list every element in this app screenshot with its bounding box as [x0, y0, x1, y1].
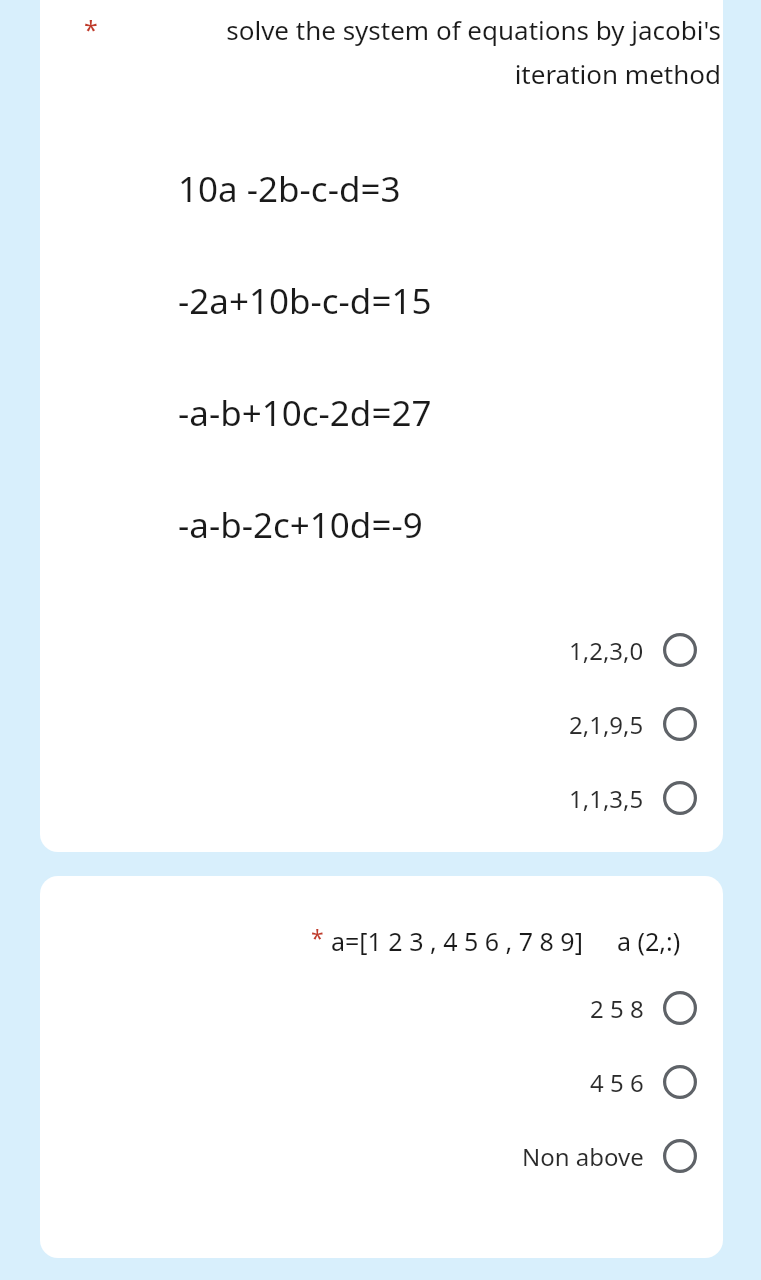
other: Select 2,1,9,5: [663, 707, 697, 741]
staticText: -a-b-2c+10d=-9: [178, 501, 423, 549]
other: Select 2 5 8: [663, 991, 697, 1025]
button[interactable]: *: [40, 0, 723, 852]
other: Select 1,1,3,5: [663, 781, 697, 815]
other: Select 4 5 6: [663, 1065, 697, 1099]
other: Select Non above: [663, 1139, 697, 1173]
button[interactable]: 1,1,3,5: [40, 761, 723, 835]
staticText: 1,1,3,5: [569, 782, 644, 815]
staticText: Non above: [522, 1140, 644, 1173]
staticText: 4 5 6: [590, 1066, 644, 1099]
staticText: -a-b+10c-2d=27: [178, 389, 432, 437]
button[interactable]: 2,1,9,5: [40, 687, 723, 761]
other: Select 1,2,3,0: [663, 633, 697, 667]
button[interactable]: *: [40, 876, 723, 1258]
button[interactable]: 1,2,3,0: [40, 613, 723, 687]
staticText: *: [84, 12, 98, 46]
staticText: 2 5 8: [590, 992, 644, 1025]
button[interactable]: 2 5 8: [40, 971, 723, 1045]
staticText: a (2,:): [617, 924, 681, 958]
staticText: 2,1,9,5: [569, 708, 644, 741]
staticText: -2a+10b-c-d=15: [178, 277, 432, 325]
staticText: 1,2,3,0: [569, 634, 644, 667]
staticText: *: [311, 922, 324, 953]
button[interactable]: 4 5 6: [40, 1045, 723, 1119]
staticText: solve the system of equations by jacobi'…: [120, 12, 721, 91]
staticText: a=[1 2 3 , 4 5 6 , 7 8 9]: [331, 924, 583, 958]
button[interactable]: Non above: [40, 1119, 723, 1193]
staticText: 10a -2b-c-d=3: [178, 165, 401, 213]
